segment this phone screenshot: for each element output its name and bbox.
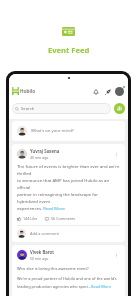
staticText: The future of events is brighter than ev… [17, 163, 120, 211]
staticText: 56 Comments [51, 216, 76, 221]
staticText: Search [21, 106, 35, 112]
button[interactable]: Notifications [91, 87, 100, 96]
staticText: 144 Like [23, 216, 38, 221]
button[interactable]: More options [113, 151, 120, 158]
staticText: Add a comment [30, 231, 59, 236]
staticText: What's on your mind? [31, 128, 74, 134]
staticText: 50 min ago [30, 256, 49, 261]
button[interactable]: Search [12, 103, 111, 114]
staticText: Hubilo [20, 88, 36, 94]
staticText: Vivek Barot [30, 249, 54, 255]
staticText: Event Feed [48, 45, 90, 55]
button[interactable]: Profile [115, 86, 125, 96]
staticText: 40 min ago [30, 155, 49, 160]
button[interactable]: 144 Like [17, 216, 38, 221]
button[interactable]: Add a comment [17, 229, 120, 238]
button[interactable]: More options [113, 252, 120, 259]
staticText: Yuvraj Saxena [30, 148, 60, 154]
button[interactable]: 56 Comments [45, 216, 76, 221]
staticText: We're a proud partner of Hubilo and one … [17, 276, 120, 289]
button[interactable]: Launch [103, 87, 112, 96]
staticText: Who else is loving this awesome event? [17, 266, 89, 271]
button[interactable]: What's on your mind? [17, 126, 120, 136]
button[interactable]: Filter [114, 103, 125, 114]
